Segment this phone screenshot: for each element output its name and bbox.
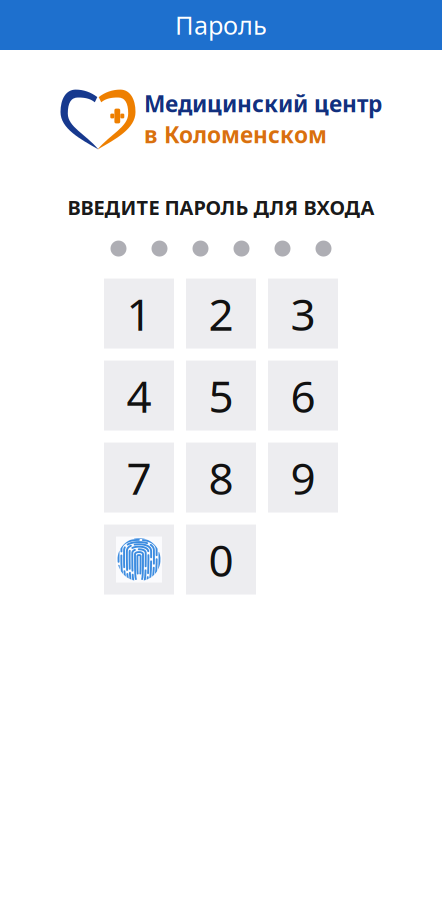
button[interactable]: 6 [268,361,338,431]
staticText: 9 [290,448,315,507]
staticText: 0 [208,530,233,589]
staticText: ВВЕДИТЕ ПАРОЛЬ ДЛЯ ВХОДА [67,194,374,221]
staticText: 6 [290,366,315,425]
staticText: 7 [126,448,151,507]
button[interactable]: 2 [186,279,256,349]
button[interactable]: 4 [104,361,174,431]
button[interactable]: 1 [104,279,174,349]
staticText: 1 [126,284,151,343]
staticText: в Коломенском [144,119,327,150]
staticText: Пароль [175,8,267,42]
button[interactable]: 8 [186,443,256,513]
staticText: 4 [126,366,151,425]
button[interactable]: 3 [268,279,338,349]
button[interactable]: 7 [104,443,174,513]
staticText: Медицинский центр [144,88,382,118]
staticText: 3 [290,284,315,343]
button[interactable]: Touch ID [104,525,174,595]
staticText: 2 [208,284,233,343]
button[interactable]: 9 [268,443,338,513]
staticText: 5 [208,366,233,425]
staticText: 8 [208,448,233,507]
button[interactable]: 5 [186,361,256,431]
button[interactable]: 0 [186,525,256,595]
